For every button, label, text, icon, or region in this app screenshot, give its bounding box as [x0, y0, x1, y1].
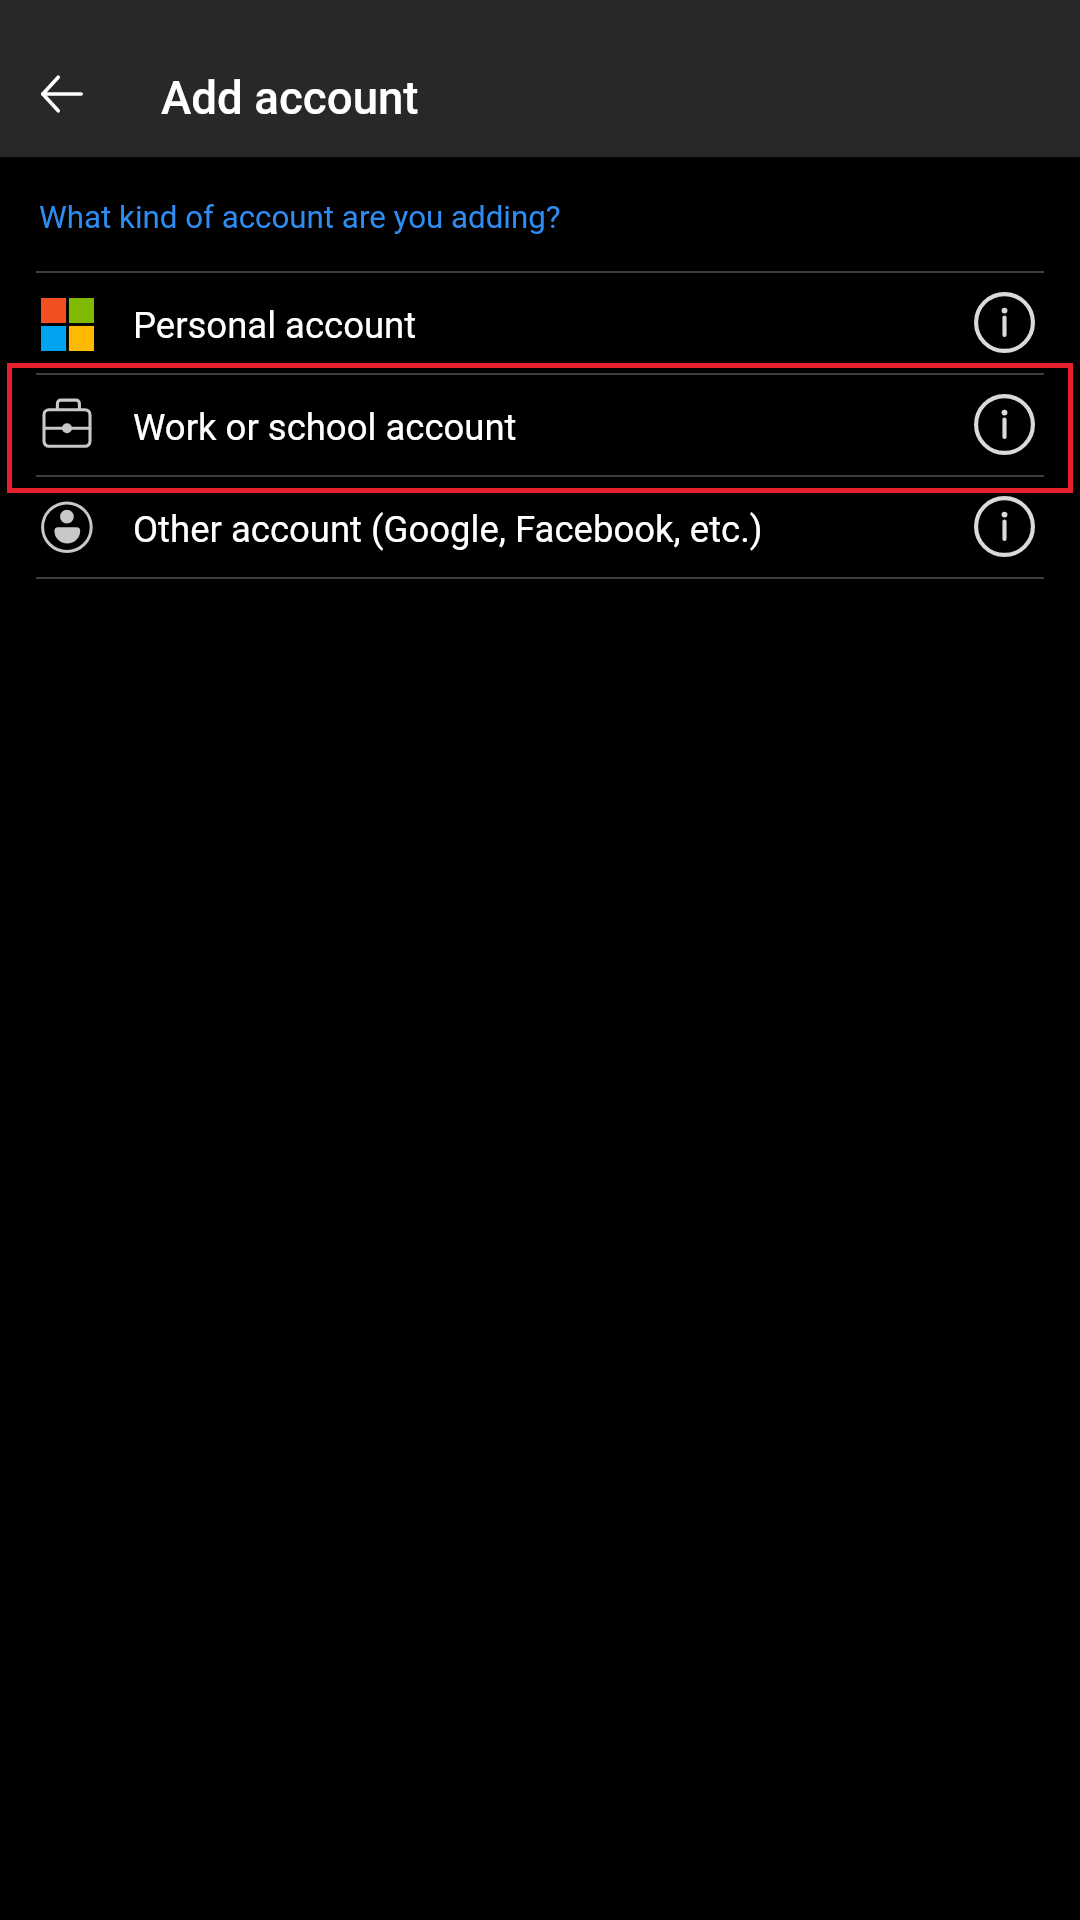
- button[interactable]: More information about Personal account: [953, 271, 1055, 373]
- staticText: Other account (Google, Facebook, etc.): [133, 508, 763, 551]
- staticText: What kind of account are you adding?: [39, 199, 561, 236]
- staticText: Personal account: [133, 304, 417, 347]
- button[interactable]: More information about Other account (Go…: [953, 475, 1055, 577]
- button[interactable]: More information about Work or school ac…: [953, 373, 1055, 475]
- staticText: Add account: [161, 72, 419, 125]
- button[interactable]: Work or school account: [0, 373, 1080, 475]
- button[interactable]: Personal account: [0, 271, 1080, 373]
- staticText: Work or school account: [133, 406, 517, 449]
- button[interactable]: Navigate up: [12, 44, 112, 144]
- button[interactable]: Other account (Google, Facebook, etc.): [0, 475, 1080, 577]
